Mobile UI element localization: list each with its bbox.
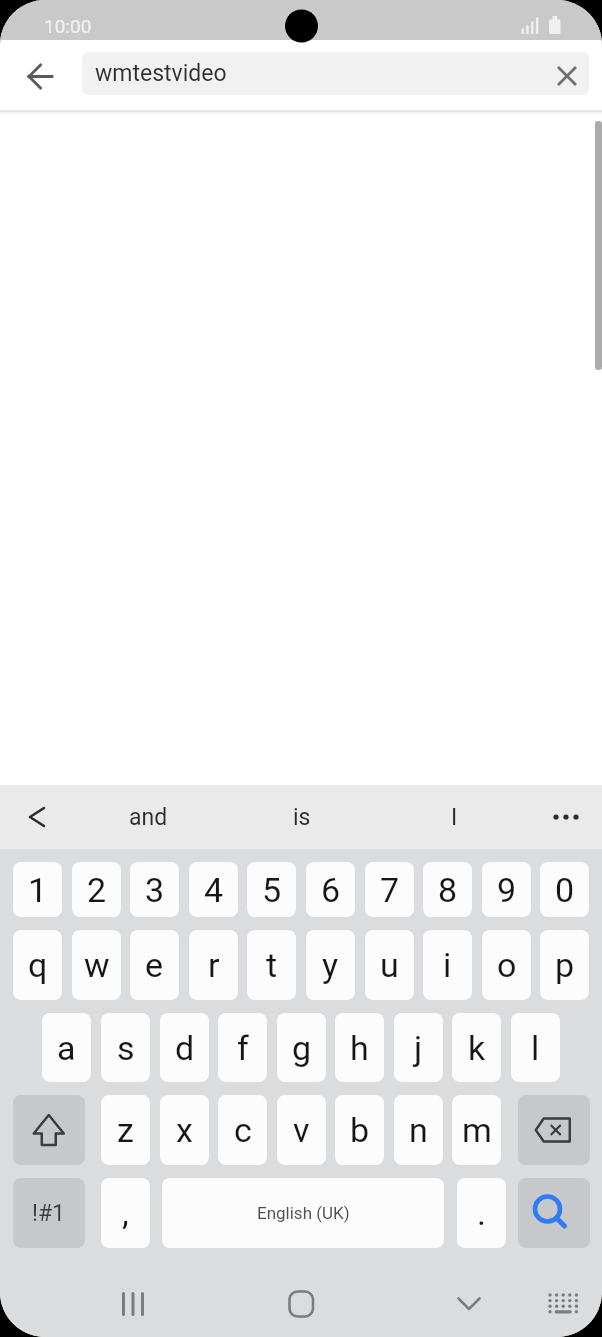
staticText: 1 (28, 870, 48, 910)
button[interactable]: 9 (482, 862, 531, 917)
staticText: is (293, 804, 311, 831)
staticText: c (234, 1110, 252, 1150)
button[interactable] (518, 1178, 590, 1248)
button[interactable] (14, 794, 60, 840)
button[interactable]: 6 (306, 862, 355, 917)
button[interactable]: b (335, 1095, 384, 1165)
button[interactable]: l (511, 1013, 560, 1082)
staticText: g (292, 1028, 312, 1068)
staticText: q (28, 945, 48, 985)
staticText: 5 (262, 870, 282, 910)
button[interactable] (549, 58, 585, 94)
staticText: i (443, 945, 452, 985)
button[interactable]: m (452, 1095, 501, 1165)
button[interactable] (16, 52, 65, 101)
button[interactable]: t (247, 930, 296, 1000)
staticText: l (531, 1028, 540, 1068)
staticText: h (350, 1028, 369, 1068)
staticText: , (122, 1193, 129, 1233)
button[interactable] (543, 794, 589, 840)
button[interactable] (278, 1281, 324, 1327)
staticText: w (84, 945, 110, 985)
staticText: o (497, 945, 517, 985)
staticText: x (176, 1110, 193, 1150)
button[interactable]: j (394, 1013, 443, 1082)
staticText: u (380, 945, 399, 985)
staticText: p (555, 945, 575, 985)
staticText: m (462, 1110, 492, 1150)
staticText: I (451, 804, 458, 831)
staticText: k (468, 1028, 486, 1068)
staticText: 2 (87, 870, 107, 910)
button[interactable]: v (277, 1095, 326, 1165)
staticText: 4 (204, 870, 224, 910)
staticText: j (414, 1028, 423, 1068)
staticText: 10:00 (44, 15, 92, 37)
staticText: t (266, 945, 278, 985)
staticText: 8 (438, 870, 458, 910)
button[interactable] (13, 1095, 85, 1165)
button[interactable] (110, 1281, 156, 1327)
staticText: 6 (321, 870, 341, 910)
button[interactable]: r (189, 930, 238, 1000)
staticText: z (117, 1110, 134, 1150)
staticText: y (322, 945, 339, 985)
button[interactable]: 5 (247, 862, 296, 917)
button[interactable]: q (13, 930, 62, 1000)
button[interactable]: wmtestvideo (82, 52, 589, 95)
button[interactable]: and (100, 785, 197, 849)
button[interactable]: f (218, 1013, 267, 1082)
button[interactable] (540, 1281, 586, 1327)
button[interactable]: a (42, 1013, 91, 1082)
staticText: d (175, 1028, 195, 1068)
staticText: 0 (555, 870, 575, 910)
button[interactable]: y (306, 930, 355, 1000)
button[interactable] (446, 1281, 492, 1327)
staticText: f (237, 1028, 249, 1068)
staticText: a (57, 1028, 76, 1068)
button[interactable]: 7 (365, 862, 414, 917)
button[interactable]: 2 (72, 862, 121, 917)
button[interactable]: g (277, 1013, 326, 1082)
staticText: 9 (497, 870, 517, 910)
button[interactable]: English (UK) (162, 1178, 444, 1248)
button[interactable]: x (160, 1095, 209, 1165)
button[interactable]: p (540, 930, 589, 1000)
staticText: r (208, 945, 220, 985)
button[interactable]: 4 (189, 862, 238, 917)
staticText: b (350, 1110, 370, 1150)
button[interactable]: I (406, 785, 503, 849)
button[interactable]: 1 (13, 862, 62, 917)
staticText: wmtestvideo (95, 60, 227, 87)
button[interactable]: s (101, 1013, 150, 1082)
staticText: 7 (380, 870, 400, 910)
button[interactable]: 8 (423, 862, 472, 917)
button[interactable]: . (457, 1178, 506, 1248)
button[interactable]: k (452, 1013, 501, 1082)
button[interactable] (518, 1095, 590, 1165)
button[interactable]: d (160, 1013, 209, 1082)
button[interactable]: !#1 (13, 1178, 85, 1248)
button[interactable]: 0 (540, 862, 589, 917)
staticText: e (145, 945, 164, 985)
staticText: v (293, 1110, 310, 1150)
button[interactable]: z (101, 1095, 150, 1165)
button[interactable]: c (218, 1095, 267, 1165)
staticText: n (409, 1110, 428, 1150)
button[interactable]: w (72, 930, 121, 1000)
button[interactable]: e (130, 930, 179, 1000)
button[interactable]: 3 (130, 862, 179, 917)
button[interactable]: h (335, 1013, 384, 1082)
button[interactable]: u (365, 930, 414, 1000)
staticText: 3 (145, 870, 165, 910)
button[interactable]: , (101, 1178, 150, 1248)
button[interactable]: is (253, 785, 350, 849)
staticText: . (477, 1193, 486, 1233)
staticText: !#1 (32, 1200, 66, 1227)
staticText: English (UK) (257, 1203, 350, 1223)
staticText: and (129, 804, 168, 831)
button[interactable]: o (482, 930, 531, 1000)
button[interactable]: n (394, 1095, 443, 1165)
button[interactable]: i (423, 930, 472, 1000)
staticText: s (117, 1028, 135, 1068)
